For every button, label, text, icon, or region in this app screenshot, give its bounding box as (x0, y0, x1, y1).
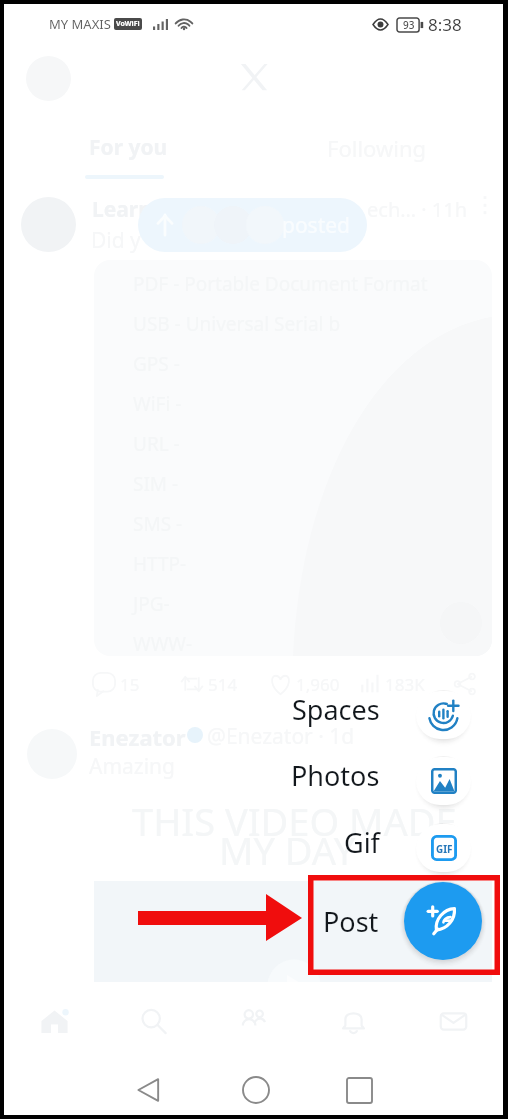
button[interactable]: Home (22, 993, 86, 1049)
staticText: Photos (291, 757, 380, 794)
staticText: Learn (92, 195, 152, 224)
staticText: posted (282, 211, 351, 240)
staticText: Spaces (292, 691, 380, 728)
staticText: MY DAY (219, 824, 356, 876)
button[interactable]: Back (112, 1054, 184, 1119)
staticText: @Enezator · 1d (207, 722, 355, 751)
button[interactable]: Share (446, 668, 484, 700)
button[interactable]: Spaces (254, 691, 480, 739)
staticText: VoWiFi (116, 19, 140, 29)
staticText: 514 (208, 673, 238, 696)
button[interactable]: Recents (323, 1054, 395, 1119)
button[interactable]: Messages (421, 993, 485, 1049)
staticText: Following (327, 133, 427, 163)
button[interactable]: Gif (254, 824, 480, 872)
staticText: GIF (436, 842, 453, 855)
button[interactable]: Post (292, 877, 482, 965)
staticText: 183K (385, 673, 425, 696)
button[interactable]: Photos (254, 757, 480, 805)
staticText: THIS VIDEO MADE (132, 795, 457, 847)
staticText: Enezator (89, 722, 186, 752)
staticText: For you (89, 133, 168, 162)
staticText: MY MAXIS (49, 15, 111, 33)
staticText: Post (323, 903, 379, 940)
staticText: Did y (91, 226, 141, 255)
staticText: Amazing (89, 752, 176, 781)
button[interactable]: Home (220, 1054, 292, 1119)
staticText: 1,960 (296, 673, 340, 696)
staticText: 93 (403, 18, 415, 32)
staticText: Gif (344, 824, 380, 861)
staticText: 8:38 (428, 13, 462, 36)
